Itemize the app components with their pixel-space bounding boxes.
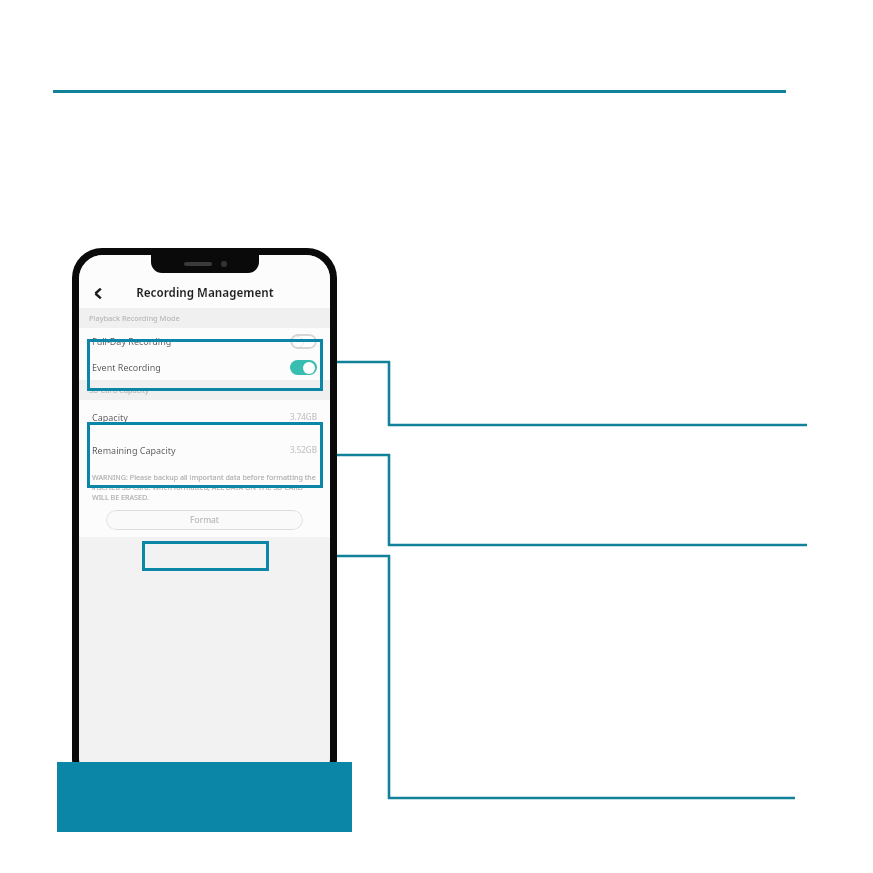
staticText: Full-Day Recording <box>92 335 290 347</box>
staticText: Recording Management <box>136 285 274 301</box>
button[interactable]: Remaining Capacity <box>79 433 330 466</box>
staticText: Event Recording <box>92 361 290 373</box>
staticText: Capacity <box>92 411 290 423</box>
button[interactable]: Format <box>106 510 303 530</box>
staticText: Playback Recording Mode <box>89 313 180 323</box>
staticText: Remaining Capacity <box>92 444 290 456</box>
button[interactable]: Capacity <box>79 400 330 433</box>
staticText: Format <box>190 514 219 526</box>
button[interactable]: Back <box>85 280 111 306</box>
staticText: SD Card Capacity <box>89 385 149 395</box>
button[interactable]: Event Recording <box>79 354 330 380</box>
staticText: 3.52GB <box>290 444 317 455</box>
staticText: 3.74GB <box>290 411 317 422</box>
staticText: WARNING: Please backup all important dat… <box>92 472 317 502</box>
button[interactable]: Full-Day Recording <box>79 328 330 354</box>
